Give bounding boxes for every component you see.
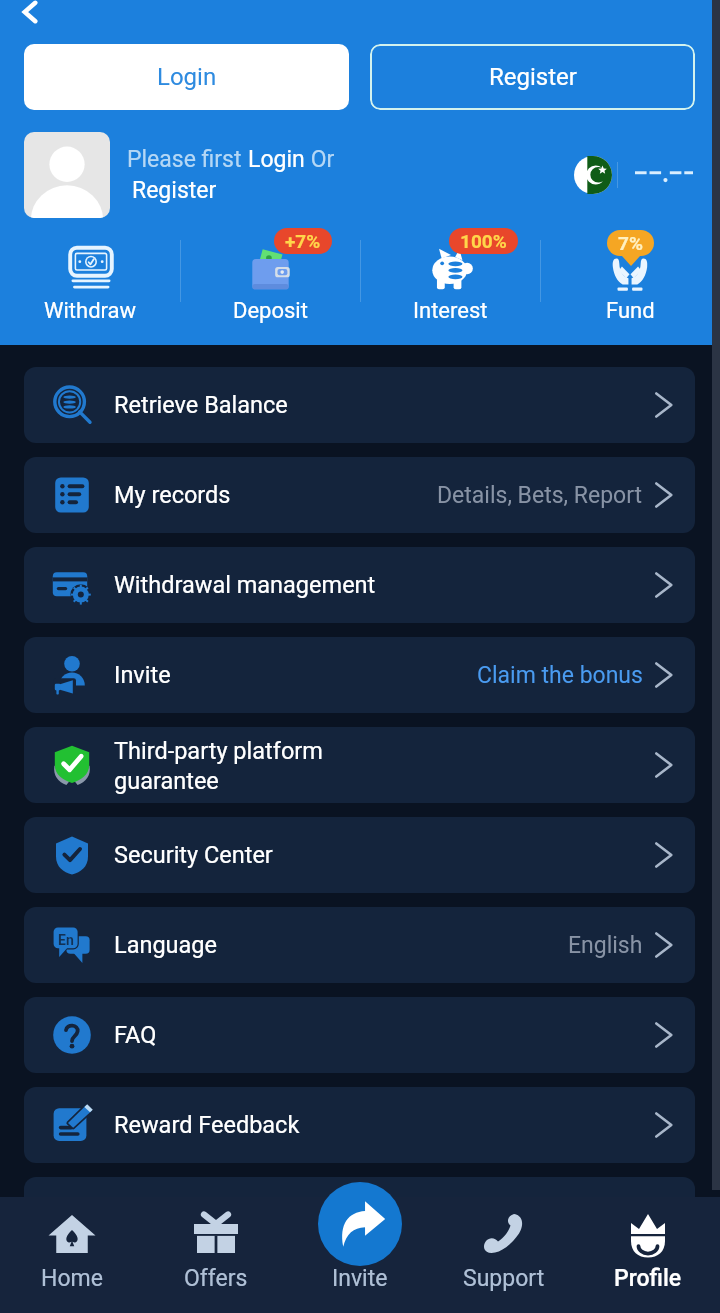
button[interactable]: En [24, 907, 695, 983]
button[interactable]: Avatar [24, 132, 110, 218]
button[interactable]: Register [370, 44, 695, 110]
button[interactable]: Withdrawal management [24, 547, 695, 623]
staticText: FAQ [114, 1021, 157, 1049]
staticText: My records [114, 481, 231, 509]
staticText: Invite [332, 1265, 388, 1292]
button[interactable]: Retrieve Balance [24, 367, 695, 443]
button[interactable]: Invite [24, 637, 695, 713]
staticText: Login [157, 63, 217, 91]
staticText: Deposit [233, 298, 308, 324]
button[interactable]: Invite [288, 1197, 432, 1313]
staticText: Third-party platform guarantee [114, 737, 323, 794]
button[interactable]: Withdraw [0, 230, 180, 324]
button[interactable]: Offers [144, 1197, 288, 1313]
staticText: Security Center [114, 841, 273, 869]
staticText: Support [463, 1265, 545, 1292]
button[interactable]: Login [24, 44, 349, 110]
button[interactable]: Invite [318, 1182, 402, 1266]
button[interactable]: 100% [360, 230, 540, 324]
staticText: Fund [606, 298, 655, 324]
button[interactable]: Third-party platform guarantee [24, 727, 695, 803]
staticText: Claim the bonus [477, 662, 643, 689]
button[interactable]: Home [0, 1197, 144, 1313]
button[interactable]: Support [432, 1197, 576, 1313]
staticText: Withdrawal management [114, 571, 376, 599]
staticText: Register [132, 177, 217, 204]
staticText: Register [489, 63, 577, 91]
staticText: Home [41, 1265, 103, 1292]
staticText: Withdraw [44, 298, 137, 324]
button[interactable]: My records [24, 457, 695, 533]
button[interactable]: Back [8, 0, 52, 34]
staticText: Invite [114, 661, 171, 689]
staticText: Details, Bets, Report [437, 482, 643, 509]
staticText: Please first [127, 146, 248, 173]
staticText: En [58, 932, 74, 948]
staticText: Reward Feedback [114, 1111, 300, 1139]
staticText: Language [114, 931, 218, 959]
button[interactable]: Profile [576, 1197, 720, 1313]
staticText: 100% [460, 230, 507, 252]
button[interactable]: FAQ [24, 997, 695, 1073]
button[interactable]: +7% [180, 230, 360, 324]
button[interactable]: 7% [540, 230, 720, 324]
staticText: +7% [285, 230, 321, 252]
staticText: Offers [184, 1265, 248, 1292]
button[interactable]: Security Center [24, 817, 695, 893]
staticText: Profile [614, 1265, 682, 1292]
staticText: 7% [618, 232, 643, 254]
staticText: Interest [413, 298, 488, 324]
staticText: Or [305, 146, 335, 173]
staticText: Login [248, 146, 305, 173]
button[interactable]: Reward Feedback [24, 1087, 695, 1163]
staticText: Retrieve Balance [114, 391, 288, 419]
staticText: English [568, 932, 643, 959]
